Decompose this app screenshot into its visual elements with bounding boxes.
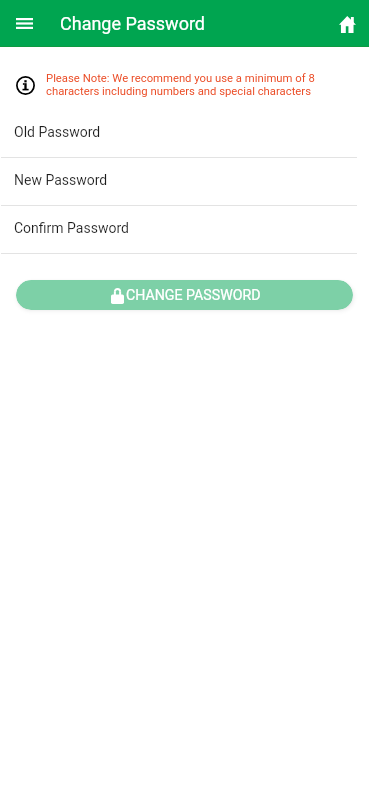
button[interactable]: Home (332, 9, 362, 39)
button[interactable]: Open navigation menu (7, 7, 41, 41)
staticText: Old Password (14, 124, 101, 140)
staticText: Confirm Password (14, 220, 129, 236)
staticText: Change Password (60, 13, 205, 34)
staticText: New Password (14, 172, 108, 188)
staticText: Please Note: We recommend you use a mini… (46, 71, 357, 97)
staticText: CHANGE PASSWORD (126, 287, 261, 304)
button[interactable]: Confirm Password (0, 206, 369, 254)
button[interactable]: CHANGE PASSWORD (16, 280, 353, 310)
button[interactable]: Old Password (0, 110, 369, 158)
button[interactable]: New Password (0, 158, 369, 206)
